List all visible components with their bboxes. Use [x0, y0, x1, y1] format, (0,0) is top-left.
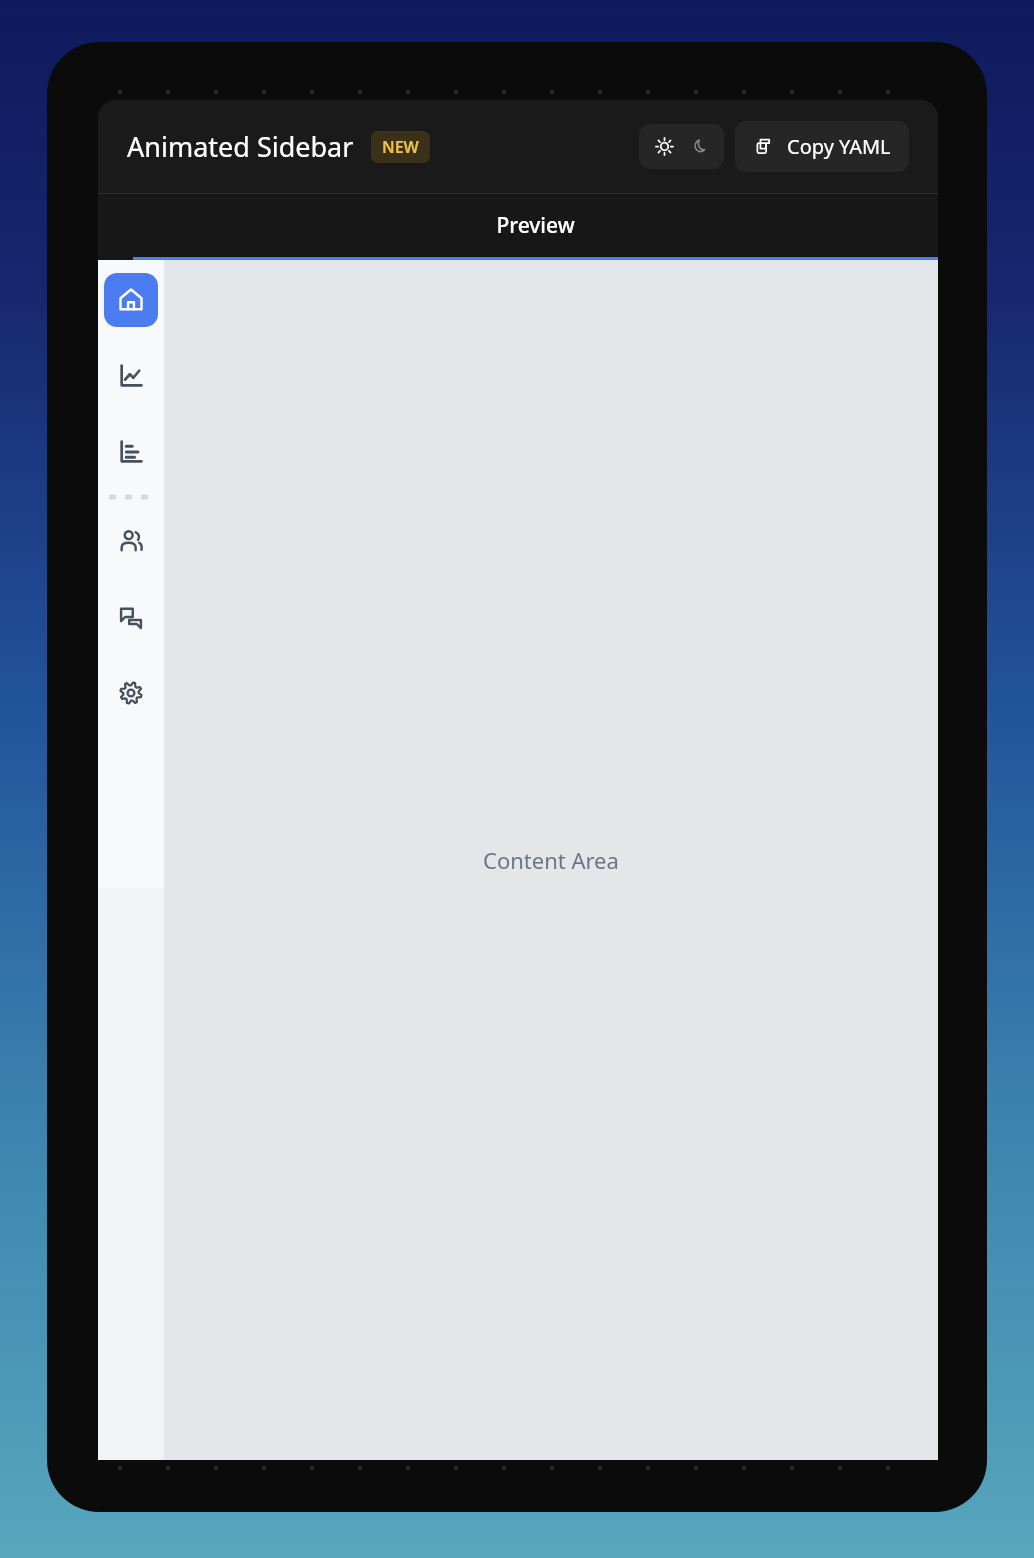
staticText: Copy YAML: [787, 133, 891, 160]
button[interactable]: Navigation item: [104, 273, 158, 327]
button[interactable]: Navigation item: [104, 514, 158, 568]
button[interactable]: Preview: [133, 194, 938, 260]
staticText: Content Area: [483, 845, 619, 875]
button[interactable]: Navigation item: [104, 666, 158, 720]
button[interactable]: Toggle theme: [639, 124, 724, 169]
staticText: Animated Sidebar: [127, 128, 354, 165]
button[interactable]: Copy YAML: [735, 121, 909, 172]
button[interactable]: Navigation item: [104, 425, 158, 479]
button[interactable]: NEW: [371, 131, 430, 163]
button[interactable]: Navigation item: [104, 590, 158, 644]
staticText: NEW: [382, 136, 419, 158]
staticText: Preview: [496, 211, 575, 240]
button[interactable]: Navigation item: [104, 349, 158, 403]
